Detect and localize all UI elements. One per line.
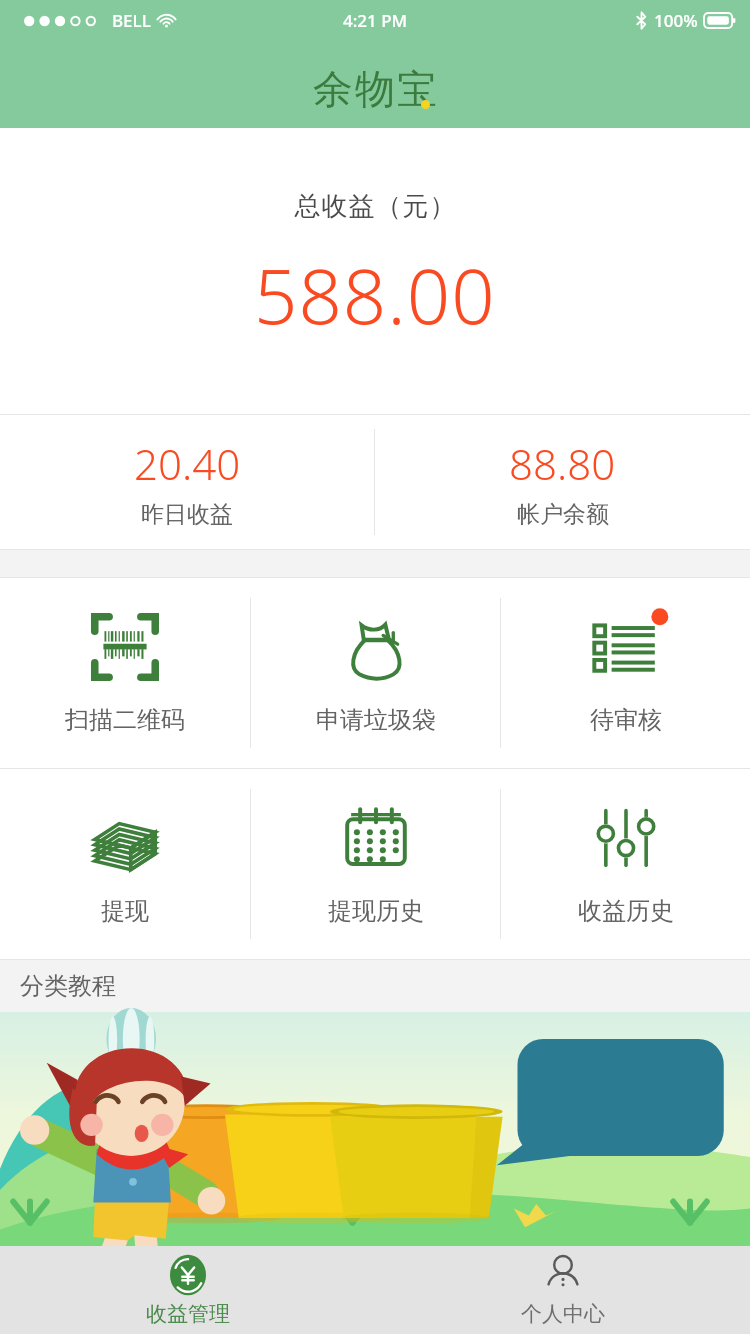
staticText: 20.40 <box>134 435 241 492</box>
button[interactable]: 申请垃圾袋 <box>251 578 500 768</box>
button[interactable]: 88.80 <box>375 415 750 549</box>
staticText: 提现 <box>101 896 149 926</box>
button[interactable]: 点击查看分类教程 <box>0 1012 750 1246</box>
button[interactable]: 扫描二维码 <box>0 578 250 768</box>
staticText: 收益管理 <box>146 1301 230 1327</box>
staticText: 提现历史 <box>328 896 424 926</box>
staticText: 收益历史 <box>578 896 674 926</box>
staticText: BELL <box>112 9 151 32</box>
staticText: 申请垃圾袋 <box>316 705 436 735</box>
staticText: 分类教程 <box>20 971 116 1001</box>
staticText: 4:21 PM <box>343 9 408 32</box>
staticText: 扫描二维码 <box>65 705 185 735</box>
staticText: 总收益（元） <box>294 190 456 223</box>
button[interactable]: 待审核 <box>501 578 750 768</box>
button[interactable]: 个人中心 <box>375 1246 750 1334</box>
button[interactable]: 提现 <box>0 769 250 959</box>
staticText: 588.00 <box>254 243 496 347</box>
staticText: 昨日收益 <box>141 500 233 529</box>
staticText: 帐户余额 <box>517 500 609 529</box>
staticText: 88.80 <box>509 435 616 492</box>
button[interactable]: 20.40 <box>0 415 374 549</box>
staticText: 100% <box>654 9 698 32</box>
staticText: 余物宝 <box>312 64 438 114</box>
button[interactable]: 收益历史 <box>501 769 750 959</box>
staticText: 个人中心 <box>521 1301 605 1327</box>
button[interactable]: 收益管理 <box>0 1246 375 1334</box>
button[interactable]: 提现历史 <box>251 769 500 959</box>
staticText: 待审核 <box>590 705 662 735</box>
